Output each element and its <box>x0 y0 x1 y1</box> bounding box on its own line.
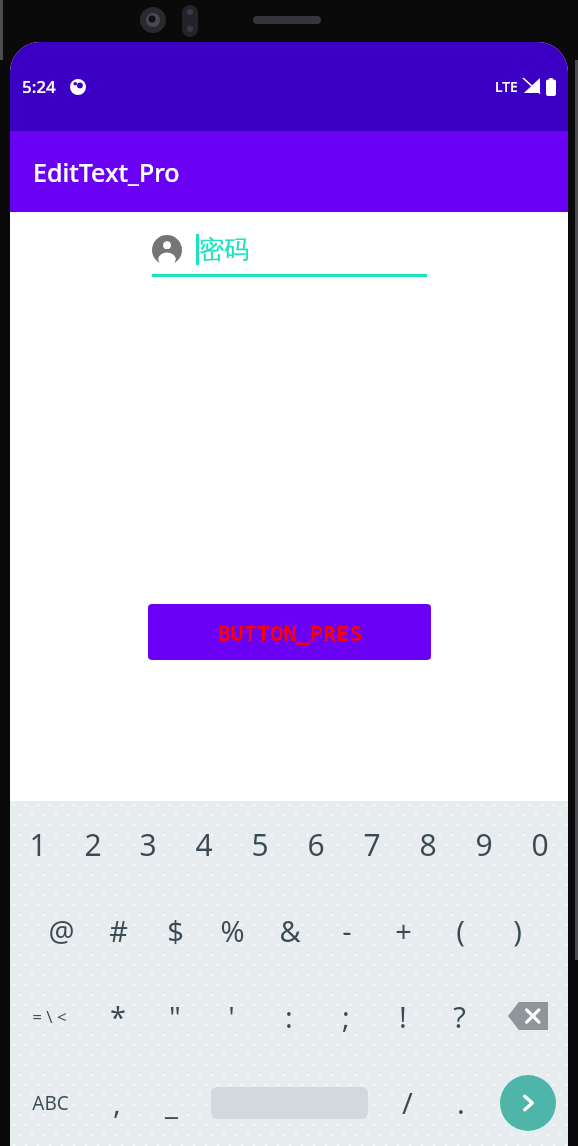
staticText: ! <box>399 997 407 1036</box>
button[interactable]: . <box>434 1059 488 1146</box>
button[interactable]: ? <box>431 973 488 1059</box>
button[interactable]: 8 <box>400 801 456 887</box>
staticText: _ <box>165 1083 178 1122</box>
button[interactable]: " <box>146 973 203 1059</box>
button[interactable]: - <box>318 887 375 973</box>
button[interactable]: 7 <box>344 801 400 887</box>
button[interactable]: Enter <box>500 1075 556 1131</box>
button[interactable]: ; <box>317 973 374 1059</box>
button[interactable]: _ <box>144 1059 198 1146</box>
staticText: + <box>395 911 412 950</box>
staticText: ( <box>456 911 465 950</box>
staticText: 7 <box>363 824 381 865</box>
staticText: & <box>279 911 301 950</box>
staticText: 0 <box>531 824 549 865</box>
button[interactable]: + <box>375 887 432 973</box>
button[interactable]: ) <box>489 887 546 973</box>
staticText: $ <box>167 911 184 950</box>
button[interactable]: 0 <box>512 801 568 887</box>
staticText: 密码 <box>199 234 249 265</box>
staticText: = \ < <box>32 1005 67 1028</box>
staticText: 5 <box>251 824 269 865</box>
button[interactable]: , <box>90 1059 144 1146</box>
staticText: @ <box>48 911 75 950</box>
button[interactable]: # <box>90 887 147 973</box>
button[interactable]: @ <box>32 887 90 973</box>
staticText: BUTTON_PRES <box>217 617 363 647</box>
staticText: ; <box>342 997 350 1036</box>
button[interactable]: 9 <box>456 801 512 887</box>
button[interactable]: ! <box>374 973 431 1059</box>
staticText: ) <box>513 911 522 950</box>
staticText: 3 <box>139 824 157 865</box>
staticText: 4 <box>195 824 213 865</box>
button[interactable]: ( <box>432 887 489 973</box>
button[interactable]: : <box>260 973 317 1059</box>
staticText: 2 <box>84 824 102 865</box>
staticText: 8 <box>419 824 437 865</box>
button[interactable]: / <box>380 1059 434 1146</box>
button[interactable]: $ <box>147 887 204 973</box>
button[interactable]: ABC <box>10 1059 90 1146</box>
staticText: ? <box>453 997 466 1036</box>
button[interactable]: = \ < <box>10 973 89 1059</box>
staticText: % <box>220 911 245 950</box>
staticText: : <box>285 997 293 1036</box>
staticText: 9 <box>475 824 493 865</box>
button[interactable]: 5 <box>232 801 288 887</box>
staticText: , <box>113 1083 121 1122</box>
button[interactable]: BUTTON_PRES <box>148 604 431 660</box>
staticText: # <box>109 911 128 950</box>
button[interactable]: 4 <box>176 801 232 887</box>
staticText: * <box>110 997 126 1036</box>
staticText: EditText_Pro <box>33 155 180 189</box>
button[interactable]: 3 <box>120 801 176 887</box>
button[interactable]: 2 <box>65 801 120 887</box>
staticText: ABC <box>32 1090 69 1116</box>
button[interactable]: 1 <box>10 801 65 887</box>
button[interactable]: & <box>261 887 318 973</box>
staticText: 1 <box>29 824 47 865</box>
staticText: ' <box>228 997 235 1036</box>
staticText: 6 <box>307 824 325 865</box>
staticText: - <box>342 911 352 950</box>
staticText: " <box>169 997 181 1036</box>
staticText: / <box>402 1083 413 1122</box>
staticText: . <box>457 1083 465 1122</box>
staticText: 5:24 <box>22 75 56 98</box>
button[interactable]: ' <box>203 973 260 1059</box>
button[interactable]: Backspace <box>488 973 568 1059</box>
button[interactable]: % <box>204 887 261 973</box>
button[interactable]: 密码 <box>152 234 427 277</box>
button[interactable]: 6 <box>288 801 344 887</box>
staticText: LTE <box>495 77 518 96</box>
button[interactable]: * <box>89 973 146 1059</box>
